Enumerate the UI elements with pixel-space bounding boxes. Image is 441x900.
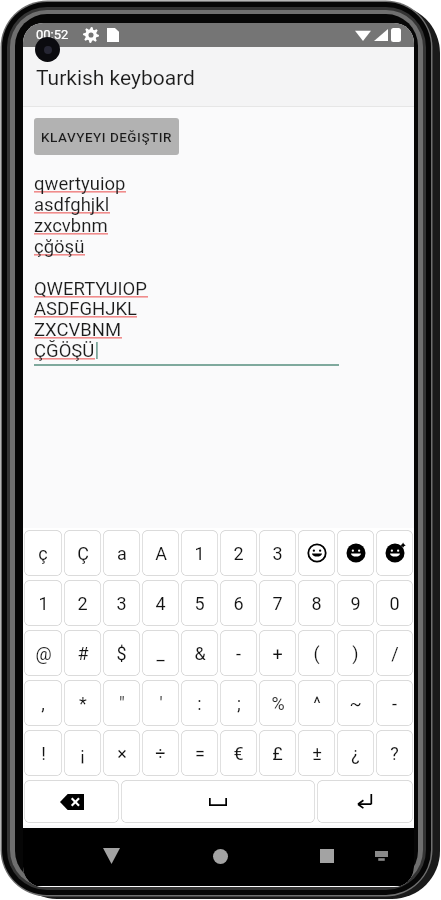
button[interactable]: ç: [24, 530, 62, 576]
button[interactable]: 3: [259, 530, 296, 576]
staticText: ): [352, 643, 359, 664]
staticText: 5: [194, 593, 205, 614]
button[interactable]: ": [103, 680, 140, 726]
button[interactable]: -: [220, 630, 257, 676]
button[interactable]: 9: [337, 580, 374, 626]
staticText: asdfghjkl: [34, 194, 110, 216]
staticText: =: [195, 743, 205, 764]
button[interactable]: :: [181, 680, 218, 726]
button[interactable]: ,: [24, 680, 62, 726]
staticText: KLAVYEYI DEĞIŞTIR: [41, 129, 172, 145]
button[interactable]: *: [64, 680, 101, 726]
staticText: &: [194, 643, 206, 664]
button[interactable]: @: [24, 630, 62, 676]
button[interactable]: Enter: [317, 780, 413, 823]
button[interactable]: Back: [92, 837, 130, 875]
staticText: Ç: [77, 543, 89, 564]
button[interactable]: KLAVYEYI DEĞIŞTIR: [34, 118, 179, 155]
button[interactable]: _: [142, 630, 179, 676]
staticText: ?: [390, 743, 399, 764]
other: Emoji: [346, 543, 366, 563]
staticText: %: [271, 693, 285, 714]
staticText: ^: [313, 693, 321, 714]
staticText: Turkish keyboard: [36, 66, 195, 91]
staticText: 9: [350, 593, 361, 614]
button[interactable]: +: [259, 630, 296, 676]
button[interactable]: Switch keyboard: [362, 837, 400, 875]
staticText: €: [233, 743, 244, 764]
button[interactable]: 7: [259, 580, 296, 626]
button[interactable]: Emoji: [298, 530, 335, 576]
button[interactable]: Emoji: [376, 530, 413, 576]
staticText: ç: [38, 543, 48, 564]
button[interactable]: ±: [298, 730, 335, 776]
staticText: 00:52: [36, 27, 69, 42]
button[interactable]: 1: [181, 530, 218, 576]
button[interactable]: ': [142, 680, 179, 726]
button[interactable]: a: [103, 530, 140, 576]
button[interactable]: !: [24, 730, 62, 776]
button[interactable]: 2: [220, 530, 257, 576]
button[interactable]: ×: [103, 730, 140, 776]
button[interactable]: ^: [298, 680, 335, 726]
button[interactable]: Space: [121, 780, 315, 823]
staticText: A: [155, 543, 167, 564]
other: Emoji: [307, 543, 327, 563]
staticText: QWERTYUIOP: [34, 278, 148, 300]
button[interactable]: A: [142, 530, 179, 576]
button[interactable]: -: [376, 680, 413, 726]
button[interactable]: ¿: [337, 730, 374, 776]
button[interactable]: ;: [220, 680, 257, 726]
button[interactable]: 0: [376, 580, 413, 626]
staticText: a: [117, 543, 127, 564]
staticText: +: [272, 643, 283, 664]
button[interactable]: ¡: [64, 730, 101, 776]
button[interactable]: /: [376, 630, 413, 676]
button[interactable]: ): [337, 630, 374, 676]
button[interactable]: Backspace: [24, 780, 119, 823]
staticText: ;: [237, 693, 241, 714]
button[interactable]: 6: [220, 580, 257, 626]
button[interactable]: ÷: [142, 730, 179, 776]
button[interactable]: 4: [142, 580, 179, 626]
staticText: /: [391, 643, 399, 664]
button[interactable]: Ç: [64, 530, 101, 576]
staticText: $: [116, 643, 127, 664]
staticText: 4: [155, 593, 166, 614]
other: Emoji: [385, 543, 405, 563]
staticText: ': [159, 693, 163, 714]
staticText: 6: [233, 593, 244, 614]
staticText: @: [35, 643, 52, 664]
staticText: 3: [116, 593, 127, 614]
button[interactable]: 3: [103, 580, 140, 626]
button[interactable]: ?: [376, 730, 413, 776]
button[interactable]: #: [64, 630, 101, 676]
button[interactable]: Recent apps: [308, 837, 346, 875]
button[interactable]: (: [298, 630, 335, 676]
staticText: (: [313, 643, 320, 664]
button[interactable]: 8: [298, 580, 335, 626]
staticText: ASDFGHJKL: [34, 298, 137, 320]
staticText: ¿: [351, 743, 360, 764]
button[interactable]: 2: [64, 580, 101, 626]
staticText: 2: [233, 543, 244, 564]
staticText: ": [119, 693, 125, 714]
button[interactable]: 5: [181, 580, 218, 626]
button[interactable]: %: [259, 680, 296, 726]
button[interactable]: 1: [24, 580, 62, 626]
button[interactable]: Emoji: [337, 530, 374, 576]
button[interactable]: £: [259, 730, 296, 776]
button[interactable]: =: [181, 730, 218, 776]
button[interactable]: Home: [201, 837, 239, 875]
staticText: -: [236, 643, 241, 664]
staticText: zxcvbnm: [34, 215, 108, 237]
staticText: -: [392, 693, 397, 714]
button[interactable]: &: [181, 630, 218, 676]
staticText: £: [272, 743, 283, 764]
staticText: ZXCVBNM: [34, 319, 122, 341]
button[interactable]: ~: [337, 680, 374, 726]
button[interactable]: €: [220, 730, 257, 776]
staticText: *: [79, 693, 87, 714]
button[interactable]: $: [103, 630, 140, 676]
staticText: ¡: [80, 743, 85, 764]
